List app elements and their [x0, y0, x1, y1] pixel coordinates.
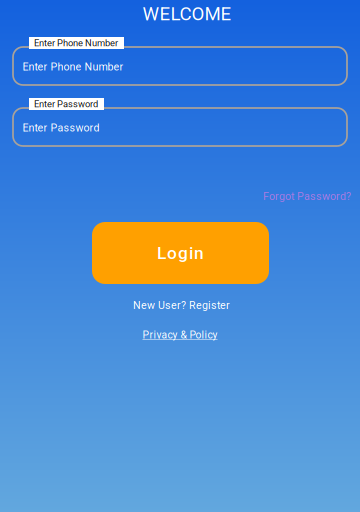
staticText: New User? Register: [133, 299, 230, 311]
staticText: Login: [157, 243, 204, 263]
button[interactable]: Privacy & Policy: [0, 329, 360, 341]
staticText: Forgot Password?: [263, 190, 351, 202]
button[interactable]: New User? Register: [0, 299, 360, 311]
staticText: WELCOME: [142, 3, 231, 25]
staticText: Enter Password: [34, 98, 98, 109]
staticText: Enter Password: [22, 121, 99, 134]
staticText: Enter Phone Number: [22, 60, 123, 73]
staticText: Enter Phone Number: [34, 37, 118, 48]
staticText: Privacy & Policy: [142, 329, 217, 341]
button[interactable]: Login: [92, 222, 269, 284]
button[interactable]: Forgot Password?: [9, 190, 351, 202]
